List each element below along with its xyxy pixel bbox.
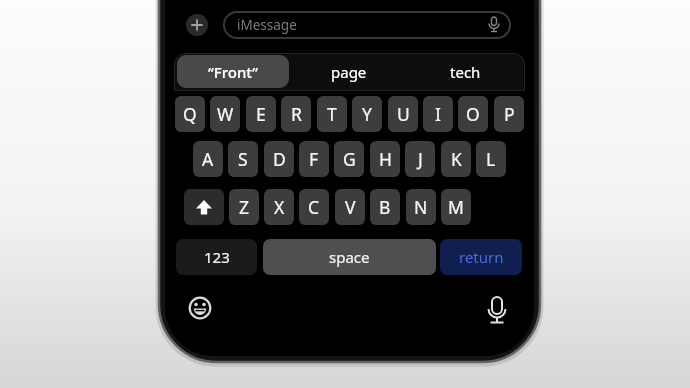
staticText: M bbox=[448, 195, 464, 219]
button[interactable]: M bbox=[441, 189, 471, 225]
staticText: E bbox=[256, 102, 266, 126]
staticText: L bbox=[486, 147, 496, 171]
button[interactable]: T bbox=[317, 96, 347, 132]
button[interactable] bbox=[484, 294, 510, 326]
button[interactable]: P bbox=[494, 96, 524, 132]
button[interactable]: S bbox=[228, 141, 258, 177]
staticText: “Front” bbox=[208, 62, 259, 82]
staticText: W bbox=[217, 102, 234, 126]
staticText: P bbox=[504, 102, 515, 126]
button[interactable]: L bbox=[476, 141, 506, 177]
staticText: A bbox=[202, 147, 214, 171]
button[interactable]: “Front” bbox=[177, 55, 289, 88]
button[interactable]: page bbox=[291, 55, 407, 88]
button[interactable]: W bbox=[210, 96, 240, 132]
staticText: Y bbox=[362, 102, 372, 126]
button[interactable]: return bbox=[440, 239, 522, 275]
staticText: T bbox=[327, 102, 337, 126]
button[interactable]: Q bbox=[175, 96, 205, 132]
button[interactable] bbox=[186, 294, 214, 322]
button[interactable]: D bbox=[264, 141, 294, 177]
staticText: Q bbox=[183, 102, 197, 126]
button[interactable]: K bbox=[441, 141, 471, 177]
button[interactable]: X bbox=[264, 189, 294, 225]
staticText: G bbox=[343, 147, 356, 171]
button[interactable]: N bbox=[406, 189, 436, 225]
staticText: K bbox=[451, 147, 462, 171]
button[interactable]: H bbox=[370, 141, 400, 177]
button[interactable]: 123 bbox=[176, 239, 257, 275]
staticText: return bbox=[459, 247, 504, 267]
button[interactable]: O bbox=[458, 96, 488, 132]
staticText: F bbox=[309, 147, 319, 171]
staticText: B bbox=[379, 195, 391, 219]
button[interactable] bbox=[184, 189, 224, 225]
button[interactable]: F bbox=[299, 141, 329, 177]
button[interactable]: A bbox=[193, 141, 223, 177]
staticText: N bbox=[414, 195, 428, 219]
staticText: page bbox=[331, 62, 367, 82]
button[interactable]: iMessage bbox=[223, 11, 511, 39]
button[interactable]: U bbox=[388, 96, 418, 132]
button[interactable]: R bbox=[281, 96, 311, 132]
button[interactable]: space bbox=[263, 239, 436, 275]
staticText: D bbox=[273, 147, 286, 171]
button[interactable]: C bbox=[299, 189, 329, 225]
staticText: S bbox=[238, 147, 248, 171]
staticText: O bbox=[466, 102, 480, 126]
button[interactable] bbox=[186, 14, 208, 36]
button[interactable]: E bbox=[246, 96, 276, 132]
staticText: C bbox=[308, 195, 320, 219]
staticText: I bbox=[435, 102, 441, 126]
staticText: space bbox=[329, 247, 370, 267]
button[interactable]: B bbox=[370, 189, 400, 225]
staticText: R bbox=[291, 102, 302, 126]
staticText: V bbox=[345, 195, 356, 219]
staticText: 123 bbox=[204, 247, 230, 267]
staticText: tech bbox=[450, 62, 481, 82]
staticText: H bbox=[379, 147, 392, 171]
button[interactable]: tech bbox=[407, 55, 523, 88]
button[interactable]: Z bbox=[229, 189, 259, 225]
staticText: U bbox=[397, 102, 410, 126]
button[interactable]: G bbox=[334, 141, 364, 177]
staticText: Z bbox=[239, 195, 250, 219]
button[interactable]: I bbox=[423, 96, 453, 132]
button[interactable]: J bbox=[405, 141, 435, 177]
staticText: iMessage bbox=[237, 16, 297, 34]
staticText: X bbox=[274, 195, 285, 219]
button[interactable]: V bbox=[335, 189, 365, 225]
staticText: J bbox=[418, 147, 423, 171]
button[interactable]: Y bbox=[352, 96, 382, 132]
